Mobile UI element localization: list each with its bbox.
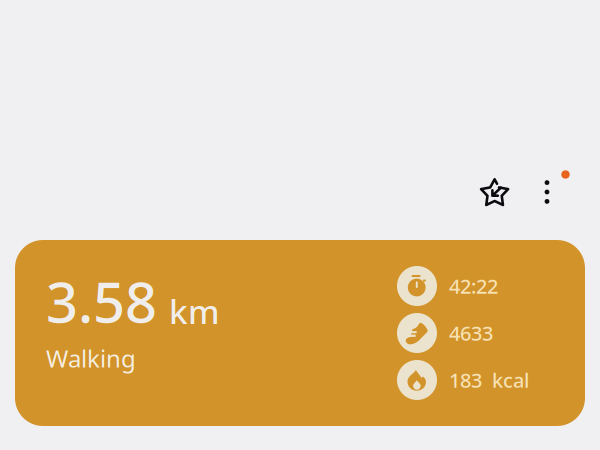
staticText: Walking	[46, 342, 136, 374]
button[interactable]: 3.58	[15, 240, 585, 426]
staticText: 183 kcal	[449, 367, 529, 393]
button[interactable]: Save to favourites	[473, 174, 517, 218]
staticText: km	[169, 289, 220, 333]
staticText: 4633	[449, 320, 493, 346]
staticText: 3.58	[46, 264, 157, 338]
button[interactable]: More options	[525, 170, 569, 214]
staticText: 42:22	[449, 273, 498, 299]
